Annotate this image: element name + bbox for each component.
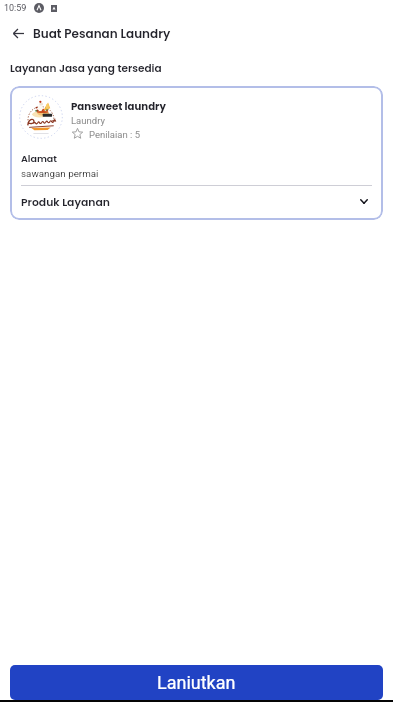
button[interactable]: Produk Layanan (10, 186, 383, 219)
staticText: Produk Layanan (21, 195, 110, 210)
staticText: sawangan permai (21, 168, 99, 179)
staticText: Laundry (71, 115, 105, 126)
staticText: Penilaian : 5 (89, 129, 141, 140)
staticText: 10:59 (4, 3, 27, 14)
staticText: Pansweet laundry (71, 99, 166, 113)
staticText: Layanan Jasa yang tersedia (10, 61, 162, 76)
staticText: Buat Pesanan Laundry (33, 25, 171, 42)
staticText: Alamat (21, 152, 57, 165)
button[interactable]: Pansweet laundry (10, 86, 383, 220)
button[interactable]: Back (5, 20, 31, 46)
staticText: Laniutkan (157, 672, 236, 693)
button[interactable]: Laniutkan (10, 665, 383, 700)
